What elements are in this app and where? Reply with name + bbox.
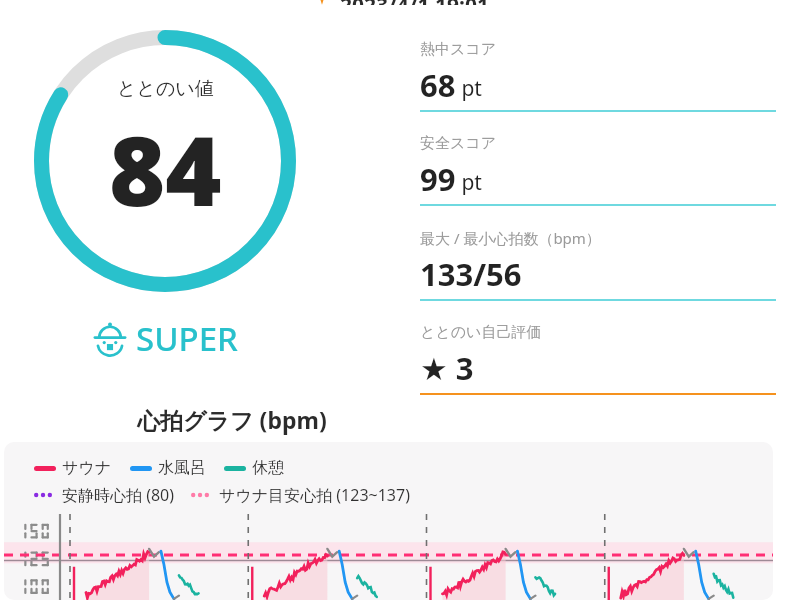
staticText: pt: [456, 74, 482, 103]
staticText: 133/56: [420, 253, 522, 295]
staticText: サウナ: [62, 458, 112, 478]
button[interactable]: 最大 / 最小心拍数（bpm）: [420, 228, 776, 301]
staticText: 水風呂: [158, 458, 206, 478]
staticText: ととのい自己評価: [420, 323, 542, 342]
button[interactable]: 水風呂: [130, 458, 206, 478]
staticText: 熱中スコア: [420, 40, 497, 59]
button[interactable]: ととのい自己評価: [420, 323, 776, 395]
button[interactable]: 休憩: [224, 458, 284, 478]
button[interactable]: サウナ: [34, 458, 112, 478]
staticText: 99: [420, 158, 456, 200]
staticText: 安全スコア: [420, 134, 497, 153]
staticText: 68: [420, 64, 456, 106]
staticText: 心拍グラフ (bpm): [137, 404, 327, 435]
staticText: 安静時心拍 (80): [62, 484, 175, 506]
staticText: サウナ目安心拍 (123~137): [219, 484, 410, 506]
staticText: ★ 3: [420, 347, 474, 389]
button[interactable]: ととのい値: [34, 30, 296, 292]
button[interactable]: サウナ: [4, 442, 773, 600]
button[interactable]: SUPER: [92, 316, 238, 361]
staticText: SUPER: [136, 316, 238, 361]
staticText: 休憩: [252, 458, 284, 478]
button[interactable]: 安静時心拍 (80): [34, 484, 175, 506]
button[interactable]: 安全スコア: [420, 134, 776, 206]
staticText: 2023/4/1 19:01: [340, 0, 489, 5]
button[interactable]: サウナ目安心拍 (123~137): [191, 484, 410, 506]
staticText: 84: [109, 103, 222, 234]
staticText: 最大 / 最小心拍数（bpm）: [420, 228, 601, 248]
button[interactable]: 熱中スコア: [420, 40, 776, 112]
staticText: pt: [456, 168, 482, 197]
staticText: ととのい値: [117, 77, 214, 101]
